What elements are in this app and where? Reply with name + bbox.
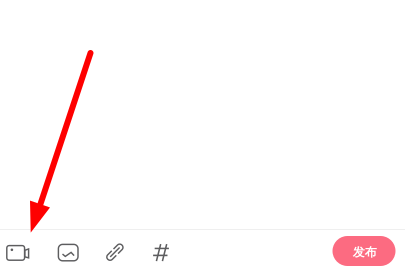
- button[interactable]: 发布: [332, 236, 395, 266]
- button[interactable]: Add link: [95, 232, 135, 270]
- button[interactable]: Add video: [0, 232, 35, 270]
- staticText: 发布: [353, 245, 377, 259]
- button[interactable]: Add topic: [141, 232, 181, 270]
- button[interactable]: Add photo: [48, 232, 88, 270]
